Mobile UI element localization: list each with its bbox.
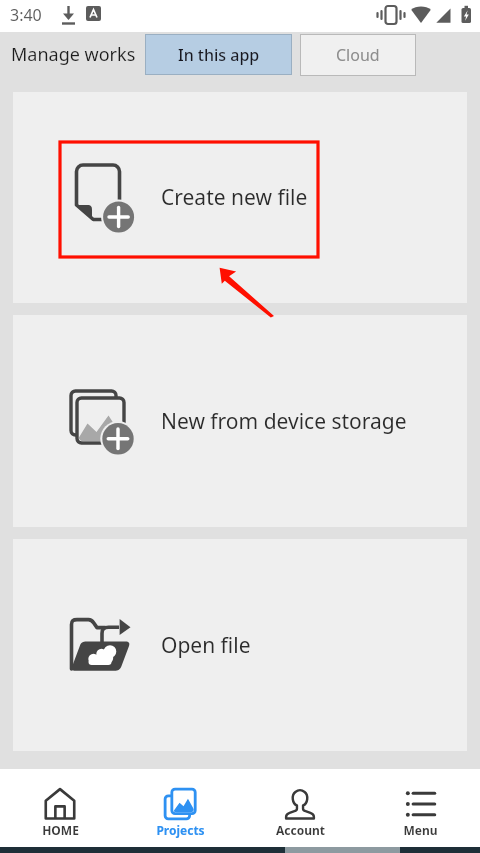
staticText: Cloud — [336, 44, 380, 66]
staticText: Menu — [403, 822, 438, 838]
button[interactable]: Account — [240, 769, 360, 847]
staticText: In this app — [178, 44, 260, 66]
staticText: Create new file — [161, 183, 308, 212]
button[interactable]: Open file — [13, 539, 467, 751]
staticText: Manage works — [11, 42, 136, 67]
staticText: Open file — [161, 631, 251, 660]
button[interactable]: In this app — [145, 34, 292, 75]
button[interactable]: New from device storage — [13, 315, 467, 527]
button[interactable]: Cloud — [300, 34, 416, 76]
staticText: HOME — [42, 822, 79, 838]
staticText: Account — [276, 822, 325, 838]
button[interactable]: HOME — [0, 769, 120, 847]
button[interactable]: Create new file — [13, 92, 467, 303]
staticText: Projects — [156, 822, 205, 838]
staticText: New from device storage — [161, 407, 407, 436]
button[interactable]: Menu — [360, 769, 480, 847]
staticText: 3:40 — [10, 4, 42, 26]
button[interactable]: Projects — [120, 769, 240, 847]
